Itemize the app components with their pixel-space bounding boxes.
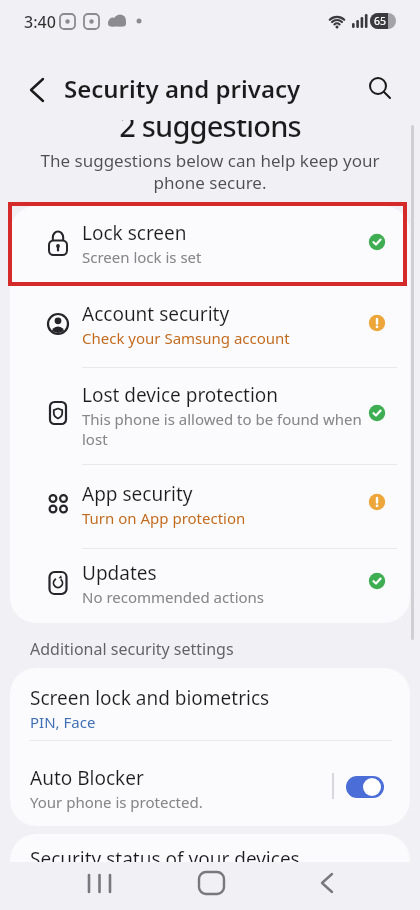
- button[interactable]: Lock screen: [10, 206, 410, 285]
- button[interactable]: Account security: [10, 285, 410, 367]
- staticText: Lock screen: [82, 220, 187, 246]
- button[interactable]: [184, 870, 240, 904]
- staticText: Turn on App protection: [82, 508, 246, 528]
- staticText: The suggestions below can help keep your…: [0, 149, 420, 194]
- staticText: Your phone is protected.: [30, 792, 203, 812]
- button[interactable]: Auto Blocker: [10, 740, 410, 826]
- button[interactable]: Updates: [10, 548, 410, 623]
- staticText: Screen lock and biometrics: [30, 685, 270, 711]
- staticText: Check your Samsung account: [82, 328, 290, 348]
- button[interactable]: [72, 870, 128, 904]
- button[interactable]: [18, 72, 54, 108]
- staticText: 65: [374, 14, 387, 28]
- button[interactable]: [346, 776, 384, 798]
- staticText: 2 suggestions: [0, 106, 420, 145]
- button[interactable]: Security status of your devices: [10, 834, 410, 910]
- staticText: 3:40: [24, 11, 56, 33]
- staticText: Security status of your devices: [30, 846, 300, 872]
- staticText: App security: [82, 481, 193, 507]
- staticText: PIN, Face: [30, 712, 96, 732]
- staticText: Lost device protection: [82, 382, 279, 408]
- staticText: This phone is allowed to be found when l…: [82, 409, 362, 449]
- staticText: Auto Blocker: [30, 765, 144, 791]
- staticText: Security and privacy: [64, 72, 301, 105]
- staticText: No recommended actions: [82, 587, 265, 607]
- button[interactable]: Screen lock and biometrics: [10, 668, 410, 740]
- staticText: Additional security settings: [30, 638, 234, 660]
- button[interactable]: App security: [10, 464, 410, 548]
- staticText: Screen lock is set: [82, 247, 202, 267]
- staticText: Updates: [82, 560, 157, 586]
- button[interactable]: [360, 68, 400, 108]
- button[interactable]: [300, 870, 356, 904]
- button[interactable]: Lost device protection: [10, 367, 410, 464]
- staticText: Account security: [82, 301, 230, 327]
